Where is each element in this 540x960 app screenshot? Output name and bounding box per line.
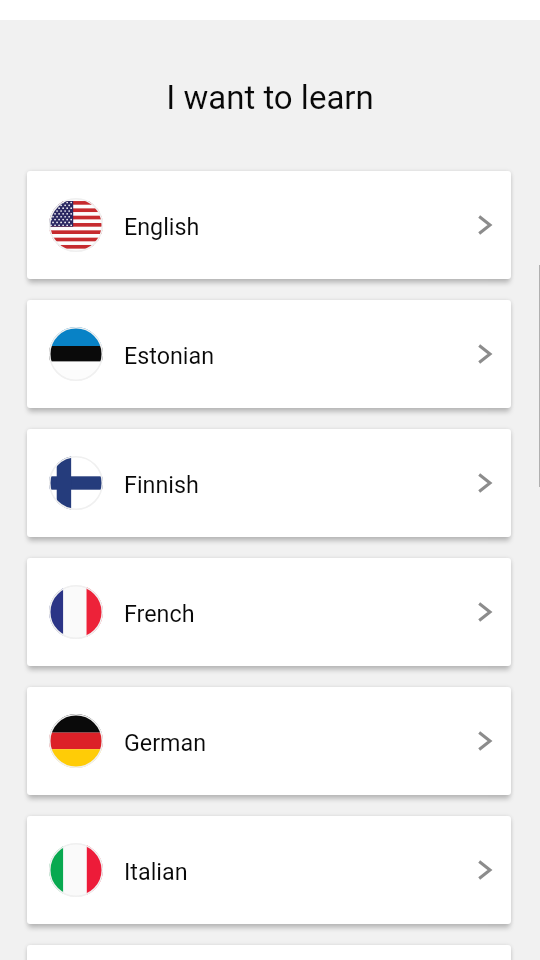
staticText: German <box>124 729 207 756</box>
button[interactable]: French <box>27 558 511 666</box>
staticText: English <box>124 213 200 240</box>
staticText: Italian <box>124 858 188 885</box>
staticText: Estonian <box>124 342 215 369</box>
staticText: I want to learn <box>166 78 374 117</box>
button[interactable]: German <box>27 687 511 795</box>
button[interactable]: Finnish <box>27 429 511 537</box>
button[interactable]: Estonian <box>27 300 511 408</box>
button[interactable]: Italian <box>27 816 511 924</box>
staticText: Finnish <box>124 471 199 498</box>
staticText: French <box>124 600 195 627</box>
button[interactable]: English <box>27 171 511 279</box>
